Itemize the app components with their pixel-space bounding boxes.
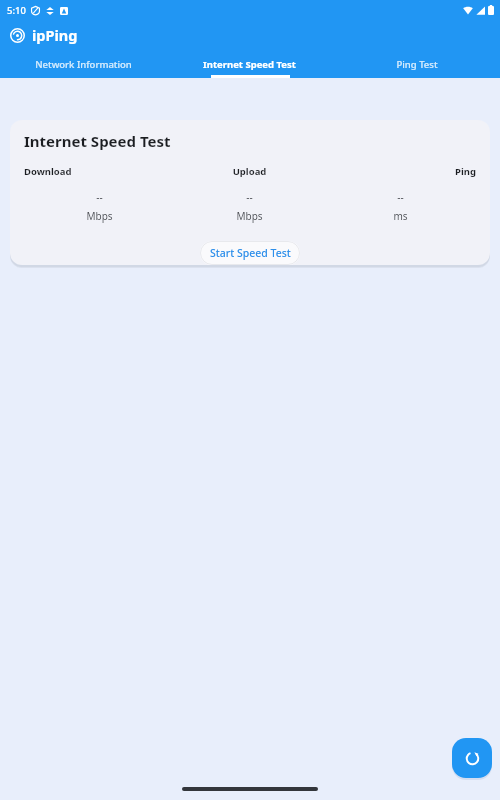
staticText: 5:10 (7, 4, 26, 17)
staticText: -- (246, 190, 253, 204)
button[interactable]: Ping Test (333, 50, 500, 78)
button[interactable]: Internet Speed Test (166, 50, 333, 78)
button[interactable]: Network Information (0, 50, 166, 78)
staticText: Internet Speed Test (203, 58, 296, 71)
staticText: Download (24, 165, 174, 178)
staticText: -- (96, 190, 103, 204)
staticText: Ping Test (396, 58, 438, 71)
staticText: Mbps (86, 209, 113, 223)
staticText: ms (393, 209, 408, 223)
staticText: Mbps (236, 209, 263, 223)
staticText: Start Speed Test (210, 246, 291, 260)
button[interactable]: Refresh (452, 738, 492, 778)
staticText: Internet Speed Test (24, 131, 171, 151)
staticText: ipPing (32, 25, 78, 45)
staticText: Ping (325, 165, 476, 178)
staticText: Network Information (35, 58, 132, 71)
staticText: -- (397, 190, 404, 204)
staticText: Upload (174, 165, 325, 178)
button[interactable]: Start Speed Test (200, 241, 300, 265)
